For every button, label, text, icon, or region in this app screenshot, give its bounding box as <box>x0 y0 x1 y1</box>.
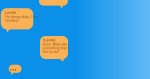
staticText: like to do? <box>43 50 60 54</box>
staticText: m_astral <box>43 38 56 42</box>
button[interactable]: m_astral <box>40 36 68 62</box>
button[interactable]: Typing <box>9 65 21 75</box>
staticText: I'm doing okay, I jus <box>5 15 38 19</box>
button[interactable]: r_astral <box>1 8 34 32</box>
button[interactable]: Message <box>39 0 68 8</box>
staticText: finished. <box>5 19 19 22</box>
staticText: Good. What abo <box>43 43 68 46</box>
staticText: r_astral <box>5 11 16 14</box>
staticText: something that y <box>43 46 70 50</box>
